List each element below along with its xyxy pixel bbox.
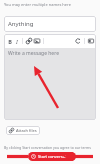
button[interactable]: Start conversation xyxy=(28,152,76,161)
staticText: I xyxy=(16,38,18,45)
staticText: Start conversation xyxy=(38,154,73,159)
button[interactable]: Full screen xyxy=(87,37,95,45)
staticText: B xyxy=(8,38,12,45)
button[interactable]: I xyxy=(13,38,20,45)
button[interactable]: Anything xyxy=(4,16,96,32)
button[interactable]: Write a message here xyxy=(5,48,95,120)
button[interactable]: Insert image xyxy=(33,37,41,45)
staticText: You may enter multiple names here xyxy=(4,2,71,7)
button[interactable]: Attach files xyxy=(6,126,40,135)
staticText: Write a message here xyxy=(8,50,59,57)
staticText: Attach files xyxy=(16,128,37,133)
staticText: Anything xyxy=(8,20,34,28)
button[interactable]: Insert link xyxy=(25,37,33,45)
button[interactable]: B xyxy=(6,38,13,45)
staticText: By clicking Start conversation you agree… xyxy=(4,145,91,150)
button[interactable]: Undo xyxy=(74,37,82,45)
